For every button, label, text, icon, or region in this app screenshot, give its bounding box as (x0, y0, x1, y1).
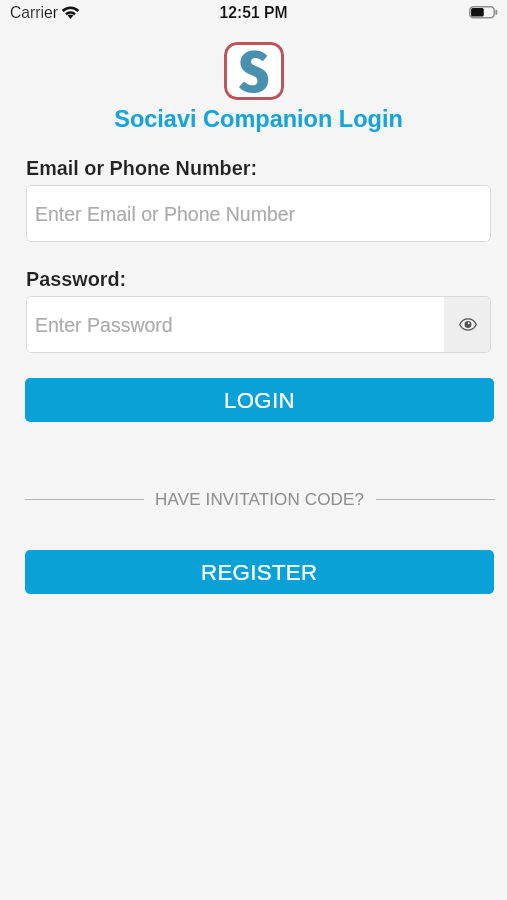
staticText: Email or Phone Number: (26, 157, 257, 179)
staticText: Password: (26, 268, 127, 290)
button[interactable]: LOGIN (25, 378, 494, 422)
button[interactable]: REGISTER (25, 550, 494, 594)
button[interactable]: Enter Password (26, 296, 491, 353)
staticText: HAVE INVITATION CODE? (155, 490, 365, 509)
staticText: Enter Email or Phone Number (35, 203, 296, 225)
staticText: REGISTER (201, 560, 318, 585)
button[interactable]: Enter Email or Phone Number (26, 185, 491, 242)
staticText: LOGIN (224, 388, 295, 413)
staticText: S (239, 42, 270, 97)
staticText: 12:51 PM (0, 4, 507, 22)
staticText: Enter Password (35, 314, 173, 336)
staticText: Sociavi Companion Login (5, 106, 507, 132)
button[interactable]: Show password (444, 296, 491, 353)
staticText: Carrier (10, 4, 58, 22)
